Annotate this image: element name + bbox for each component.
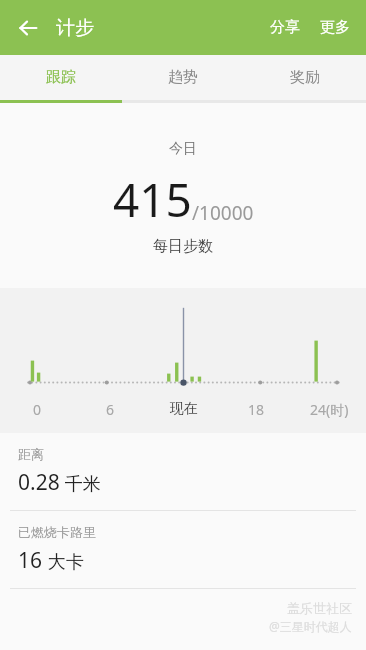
staticText: @三星时代超人 [269, 618, 352, 634]
staticText: 0.28 [18, 468, 60, 497]
staticText: 大卡 [43, 549, 84, 574]
button[interactable]: 距离 [0, 433, 366, 510]
staticText: 千米 [60, 471, 101, 496]
staticText: 更多 [320, 18, 350, 37]
button[interactable]: 趋势 [122, 55, 244, 100]
button[interactable]: 分享 [260, 8, 310, 47]
staticText: 今日 [169, 140, 197, 158]
staticText: 6 [106, 400, 115, 419]
staticText: 每日步数 [153, 237, 213, 256]
staticText: 现在 [170, 400, 198, 418]
button[interactable]: 已燃烧卡路里 [0, 511, 366, 588]
staticText: 已燃烧卡路里 [18, 524, 96, 540]
staticText: /10000 [192, 200, 254, 226]
staticText: 计步 [56, 16, 94, 40]
staticText: 盖乐世社区 [287, 600, 352, 616]
button[interactable]: 跟踪 [0, 55, 122, 100]
staticText: 24(时) [310, 400, 349, 419]
button[interactable]: Back [8, 8, 48, 48]
staticText: 16 [18, 546, 43, 575]
staticText: 0 [33, 400, 42, 419]
staticText: 分享 [270, 18, 300, 37]
staticText: 18 [248, 400, 265, 419]
staticText: 跟踪 [46, 68, 76, 87]
staticText: 415 [113, 168, 192, 231]
button[interactable]: 奖励 [244, 55, 366, 100]
staticText: 距离 [18, 446, 44, 462]
staticText: 趋势 [168, 68, 198, 87]
staticText: 奖励 [290, 68, 320, 87]
button[interactable]: 更多 [310, 8, 366, 47]
